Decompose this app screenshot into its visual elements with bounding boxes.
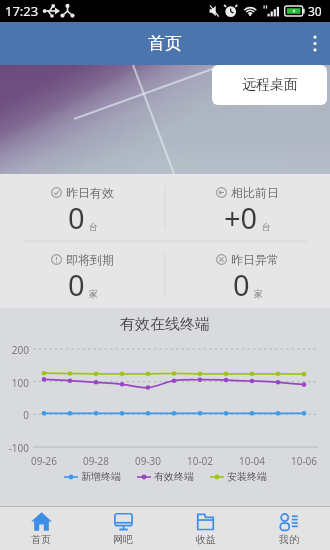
staticText: 网吧 bbox=[113, 533, 133, 546]
staticText: 家 bbox=[254, 288, 263, 299]
button[interactable]: 网吧 bbox=[82, 507, 164, 550]
staticText: 09-28 bbox=[76, 454, 116, 468]
staticText: +0 bbox=[224, 198, 258, 237]
staticText: 有效在线终端 bbox=[120, 315, 210, 334]
staticText: 30 bbox=[308, 3, 322, 19]
button[interactable]: 昨日异常 bbox=[165, 241, 330, 308]
staticText: 200 bbox=[0, 343, 29, 357]
button[interactable]: More options bbox=[300, 22, 330, 65]
staticText: 0 bbox=[0, 408, 29, 422]
staticText: 首页 bbox=[31, 533, 51, 546]
staticText: 0 bbox=[68, 198, 85, 237]
staticText: 台 bbox=[262, 221, 271, 232]
staticText: -100 bbox=[0, 441, 29, 455]
staticText: 10-02 bbox=[180, 454, 220, 468]
staticText: 新增终端 bbox=[81, 470, 121, 483]
staticText: 0 bbox=[68, 265, 85, 304]
button[interactable]: 相比前日 bbox=[165, 174, 330, 241]
staticText: 0 bbox=[233, 265, 250, 304]
button[interactable]: 即将到期 bbox=[0, 241, 165, 308]
staticText: 收益 bbox=[196, 533, 216, 546]
staticText: 即将到期 bbox=[66, 252, 114, 267]
button[interactable]: 昨日有效 bbox=[0, 174, 165, 241]
staticText: 10-06 bbox=[284, 454, 324, 468]
staticText: 我的 bbox=[279, 533, 299, 546]
staticText: 09-30 bbox=[128, 454, 168, 468]
staticText: 有效终端 bbox=[154, 470, 194, 483]
staticText: 17:23 bbox=[5, 2, 39, 20]
staticText: 100 bbox=[0, 376, 29, 390]
button[interactable]: 远程桌面 bbox=[212, 65, 327, 105]
staticText: 首页 bbox=[148, 33, 182, 54]
button[interactable]: 我的 bbox=[247, 507, 330, 550]
staticText: 台 bbox=[89, 221, 98, 232]
staticText: 相比前日 bbox=[231, 185, 279, 200]
staticText: 远程桌面 bbox=[242, 76, 298, 94]
button[interactable]: 首页 bbox=[0, 507, 82, 550]
staticText: 10-04 bbox=[232, 454, 272, 468]
staticText: 安装终端 bbox=[227, 470, 267, 483]
staticText: 家 bbox=[89, 288, 98, 299]
staticText: 09-26 bbox=[24, 454, 64, 468]
staticText: 昨日有效 bbox=[66, 185, 114, 200]
button[interactable]: 收益 bbox=[164, 507, 247, 550]
staticText: 昨日异常 bbox=[231, 252, 279, 267]
